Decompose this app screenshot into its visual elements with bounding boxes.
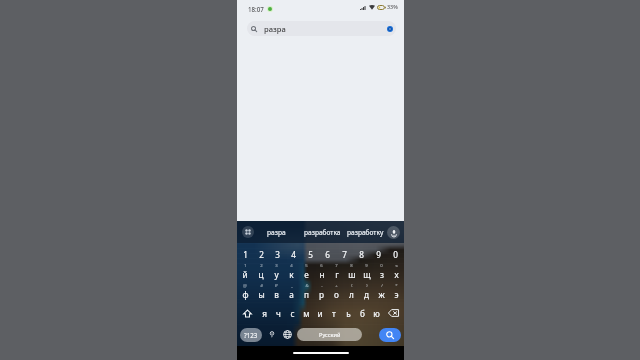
staticText: ж	[378, 289, 385, 300]
button[interactable]: 8	[344, 263, 359, 283]
button[interactable]: Shift	[237, 303, 257, 323]
button[interactable]: Search	[379, 328, 401, 342]
button[interactable]: Keyboard toolbar	[242, 226, 254, 238]
button[interactable]: +	[329, 283, 344, 303]
staticText: 4	[290, 263, 293, 269]
staticText: 8	[359, 249, 364, 260]
staticText: разра	[264, 24, 286, 34]
staticText: ш	[348, 269, 356, 280]
button[interactable]: Change language	[282, 329, 293, 340]
staticText: *	[395, 283, 398, 289]
button[interactable]: Backspace	[383, 303, 404, 323]
button[interactable]: 0	[387, 243, 404, 263]
staticText: @	[243, 283, 247, 289]
button[interactable]: 3	[269, 263, 284, 283]
staticText: ?123	[244, 331, 258, 339]
button[interactable]: ₽	[269, 283, 284, 303]
staticText: н	[319, 269, 325, 280]
button[interactable]: 7	[329, 263, 344, 283]
button[interactable]: м	[299, 303, 313, 323]
button[interactable]: 2	[253, 243, 269, 263]
staticText: г	[335, 269, 339, 280]
button[interactable]: 9	[359, 263, 374, 283]
staticText: 33%	[387, 3, 398, 10]
button[interactable]: б	[355, 303, 369, 323]
button[interactable]: 0	[374, 263, 389, 283]
staticText: 2	[260, 263, 263, 269]
button[interactable]: 1	[237, 243, 253, 263]
staticText: 1	[243, 249, 248, 260]
button[interactable]: -	[314, 283, 329, 303]
button[interactable]: 2	[253, 263, 269, 283]
button[interactable]: т	[327, 303, 341, 323]
staticText: _	[291, 283, 293, 289]
staticText: разра	[267, 228, 286, 237]
staticText: разработку	[347, 228, 384, 237]
button[interactable]: &	[299, 283, 314, 303]
staticText: ы	[258, 289, 265, 300]
button[interactable]: Voice input	[387, 226, 400, 239]
button[interactable]: Google Lens	[386, 25, 394, 33]
button[interactable]: )	[359, 283, 374, 303]
button[interactable]: я	[257, 303, 271, 323]
staticText: о	[334, 289, 339, 300]
staticText: 0	[380, 263, 383, 269]
staticText: -	[321, 283, 323, 289]
staticText: 9	[365, 263, 368, 269]
staticText: #	[260, 283, 263, 289]
staticText: а	[289, 289, 294, 300]
button[interactable]: 7	[336, 243, 353, 263]
staticText: 8	[350, 263, 353, 269]
button[interactable]: с	[285, 303, 299, 323]
button[interactable]: ч	[271, 303, 285, 323]
staticText: л	[349, 289, 354, 300]
button[interactable]: 5	[299, 263, 314, 283]
staticText: и	[317, 308, 323, 319]
button[interactable]: #	[253, 283, 269, 303]
button[interactable]: ъ	[389, 263, 404, 283]
button[interactable]: *	[389, 283, 404, 303]
staticText: 7	[335, 263, 338, 269]
button[interactable]: разра	[247, 21, 396, 36]
button[interactable]: ю	[369, 303, 383, 323]
staticText: +	[335, 283, 338, 289]
staticText: у	[274, 269, 279, 280]
staticText: 2	[259, 249, 264, 260]
button[interactable]: (	[344, 283, 359, 303]
staticText: е	[304, 269, 309, 280]
button[interactable]: _	[284, 283, 299, 303]
staticText: Русский	[319, 331, 341, 339]
button[interactable]: разработку	[347, 224, 384, 240]
button[interactable]: Русский	[297, 328, 362, 341]
staticText: 9	[376, 249, 381, 260]
staticText: ъ	[395, 263, 398, 269]
button[interactable]: и	[313, 303, 327, 323]
button[interactable]: разработка	[304, 224, 341, 240]
button[interactable]: 5	[302, 243, 319, 263]
button[interactable]: 8	[353, 243, 370, 263]
staticText: 5	[305, 263, 308, 269]
staticText: ч	[276, 308, 281, 319]
button[interactable]: 4	[285, 243, 302, 263]
button[interactable]: 6	[319, 243, 336, 263]
staticText: я	[262, 308, 267, 319]
button[interactable]: /	[374, 283, 389, 303]
staticText: д	[364, 289, 369, 300]
button[interactable]: разра	[267, 224, 286, 240]
staticText: в	[274, 289, 279, 300]
staticText: с	[290, 308, 295, 319]
button[interactable]: 9	[370, 243, 387, 263]
button[interactable]: Emoji	[266, 329, 277, 340]
button[interactable]: ?123	[240, 328, 262, 342]
button[interactable]: ь	[341, 303, 355, 323]
staticText: щ	[363, 269, 371, 280]
staticText: 3	[275, 249, 280, 260]
button[interactable]: 4	[284, 263, 299, 283]
button[interactable]: 6	[314, 263, 329, 283]
staticText: разработка	[304, 228, 341, 237]
button[interactable]: 3	[269, 243, 285, 263]
staticText: з	[380, 269, 384, 280]
staticText: (	[351, 283, 353, 289]
button[interactable]: 1	[237, 263, 253, 283]
button[interactable]: @	[237, 283, 253, 303]
